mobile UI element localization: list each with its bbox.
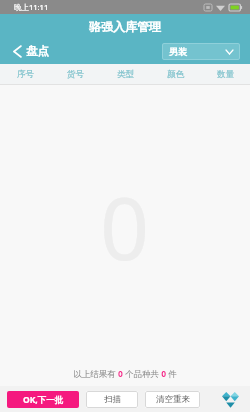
staticText: 晚上11:11 — [14, 2, 49, 12]
staticText: 扫描 — [104, 394, 121, 405]
staticText: 以上结果有 0 个品种共 0 件 — [73, 368, 177, 380]
button[interactable]: 盘点 — [10, 42, 53, 60]
button[interactable]: Dropbox sync — [219, 388, 241, 410]
staticText: 货号 — [67, 69, 84, 80]
staticText: 序号 — [17, 69, 34, 80]
button[interactable]: 清空重来 — [145, 391, 200, 408]
staticText: 骆强入库管理 — [89, 19, 161, 34]
staticText: 颜色 — [167, 69, 184, 80]
button[interactable]: OK,下一批 — [7, 391, 79, 408]
staticText: 数量 — [217, 69, 234, 80]
staticText: 清空重来 — [156, 394, 190, 405]
button[interactable]: 扫描 — [86, 391, 138, 408]
staticText: 类型 — [117, 69, 134, 80]
staticText: 0 — [100, 168, 150, 285]
button[interactable]: 男装 — [162, 43, 240, 60]
staticText: OK,下一批 — [23, 394, 64, 406]
staticText: 男装 — [169, 46, 187, 57]
staticText: 盘点 — [26, 44, 49, 58]
